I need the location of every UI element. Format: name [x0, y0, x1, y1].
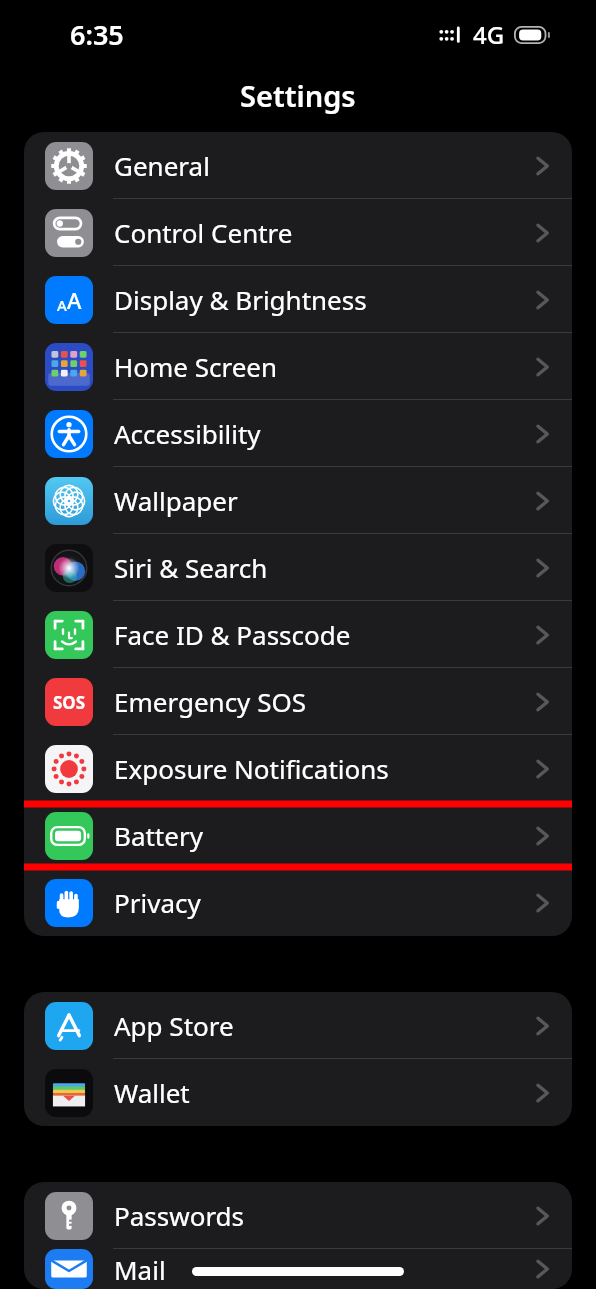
staticText: A [67, 285, 82, 315]
staticText: App Store [114, 1008, 534, 1043]
button[interactable]: Home Screen [24, 333, 572, 400]
staticText: Face ID & Passcode [114, 617, 534, 652]
button[interactable]: Control Centre [24, 199, 572, 266]
staticText: Exposure Notifications [114, 751, 534, 786]
staticText: A [57, 295, 67, 315]
staticText: Passwords [114, 1198, 534, 1233]
staticText: Emergency SOS [114, 684, 534, 719]
staticText: General [114, 148, 534, 183]
staticText: Siri & Search [114, 550, 534, 585]
button[interactable]: Wallpaper [24, 467, 572, 534]
staticText: Privacy [114, 885, 534, 920]
staticText: Battery [114, 818, 534, 853]
staticText: Wallpaper [114, 483, 534, 518]
button[interactable]: Siri & Search [24, 534, 572, 601]
staticText: Mail [114, 1252, 534, 1287]
button[interactable]: General [24, 132, 572, 199]
staticText: Accessibility [114, 416, 534, 451]
button[interactable]: Mail [24, 1249, 572, 1289]
staticText: 4G [473, 18, 505, 51]
staticText: Home Screen [114, 349, 534, 384]
button[interactable]: Face ID & Passcode [24, 601, 572, 668]
button[interactable]: Privacy [24, 869, 572, 936]
staticText: Settings [240, 76, 356, 115]
button[interactable]: Accessibility [24, 400, 572, 467]
button[interactable]: Passwords [24, 1182, 572, 1249]
staticText: SOS [53, 691, 86, 714]
button[interactable]: A [24, 266, 572, 333]
staticText: Display & Brightness [114, 282, 534, 317]
button[interactable]: SOS [24, 668, 572, 735]
button[interactable]: App Store [24, 992, 572, 1059]
staticText: 6:35 [70, 16, 124, 53]
button[interactable]: Exposure Notifications [24, 735, 572, 802]
button[interactable]: Wallet [24, 1059, 572, 1126]
staticText: Control Centre [114, 215, 534, 250]
button[interactable]: Battery [24, 802, 572, 869]
staticText: Wallet [114, 1075, 534, 1110]
